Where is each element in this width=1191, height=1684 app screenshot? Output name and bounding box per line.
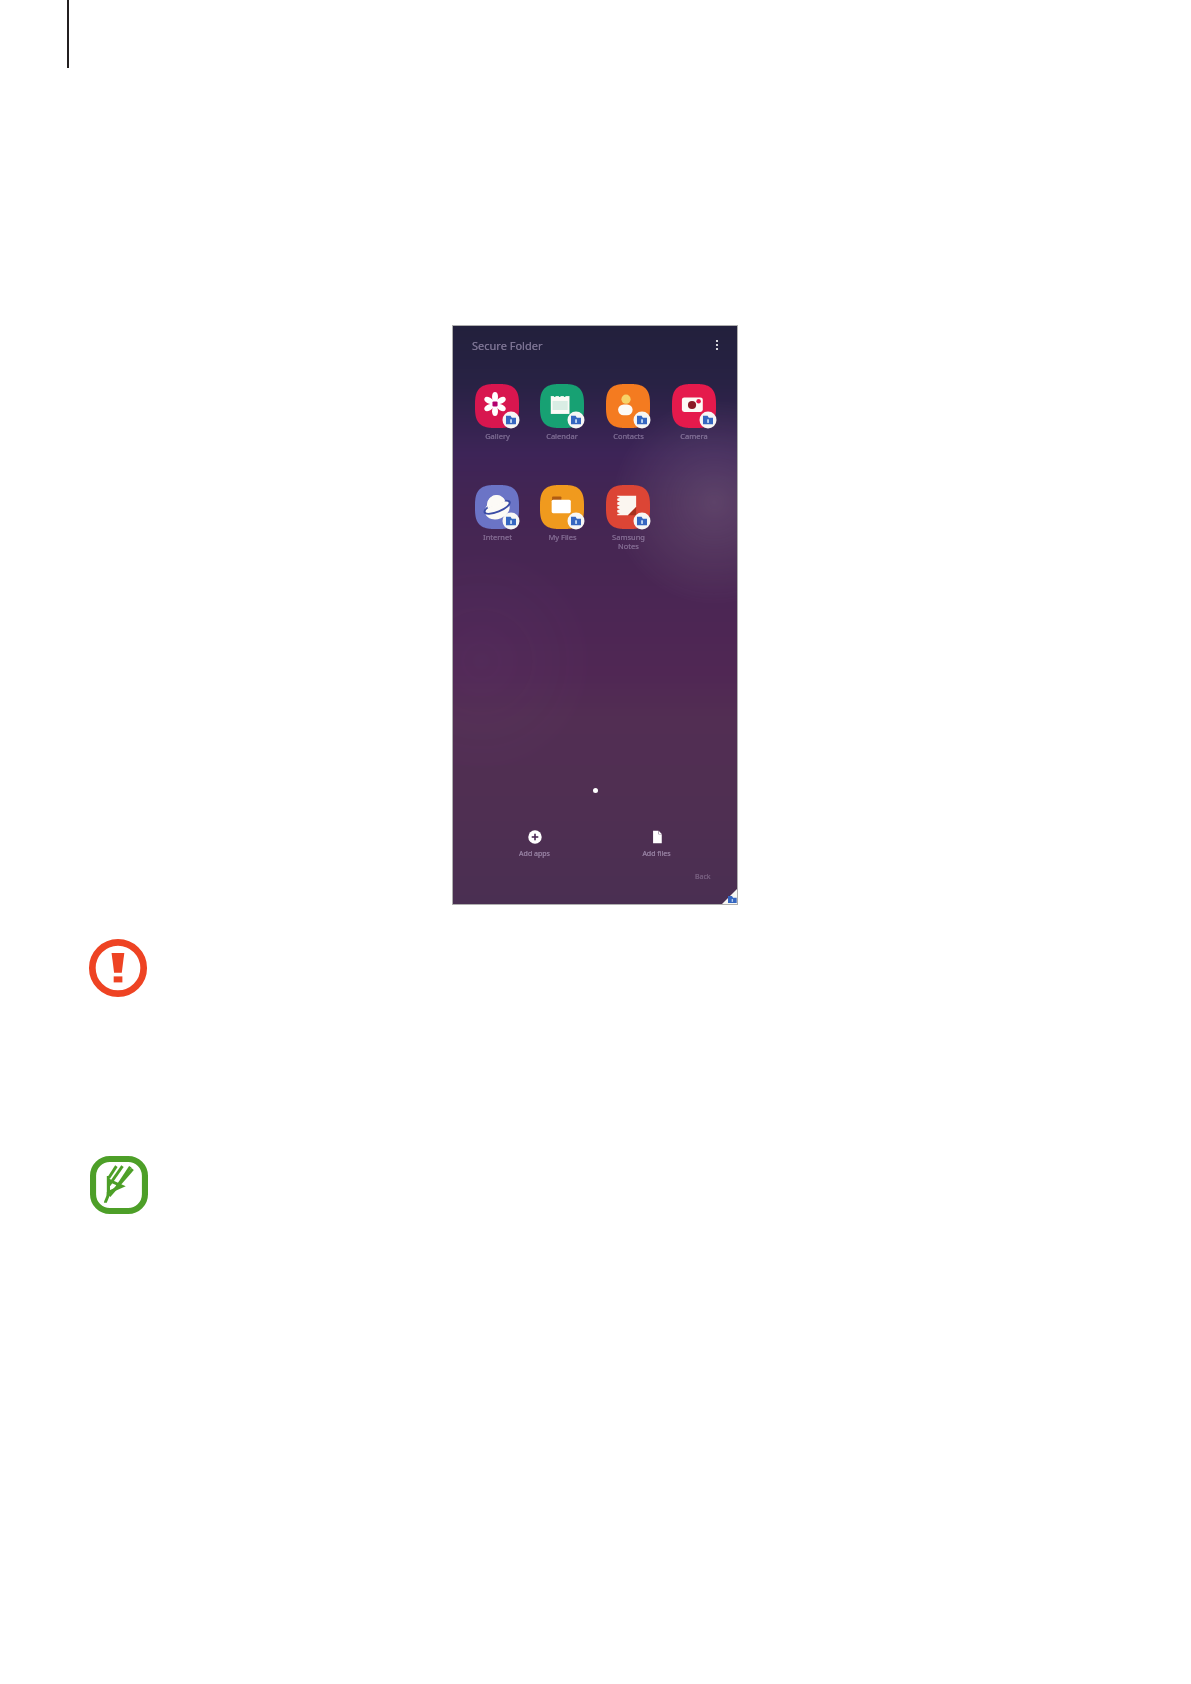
other: Note (90, 1156, 148, 1214)
staticText: Add apps (519, 849, 550, 859)
staticText: Internet (483, 532, 512, 542)
button[interactable]: Add files (624, 830, 689, 859)
button[interactable]: Gallery (469, 384, 525, 441)
button[interactable]: More options (707, 335, 727, 355)
button[interactable]: Contacts (600, 384, 656, 441)
staticText: Secure Folder (472, 338, 543, 353)
staticText: Samsung Notes (612, 532, 645, 551)
button[interactable]: My Files (534, 485, 590, 542)
button[interactable]: Add apps (502, 830, 567, 859)
button[interactable]: Internet (469, 485, 525, 542)
staticText: Back (695, 872, 711, 882)
staticText: My Files (548, 532, 577, 542)
button[interactable]: Calendar (534, 384, 590, 441)
button[interactable]: Samsung Notes (600, 485, 656, 551)
staticText: Gallery (485, 431, 510, 441)
button[interactable]: Camera (666, 384, 722, 441)
other: Warning (88, 938, 148, 998)
staticText: Camera (680, 431, 708, 441)
staticText: Contacts (613, 431, 644, 441)
staticText: Add files (642, 849, 671, 859)
staticText: Calendar (546, 431, 578, 441)
